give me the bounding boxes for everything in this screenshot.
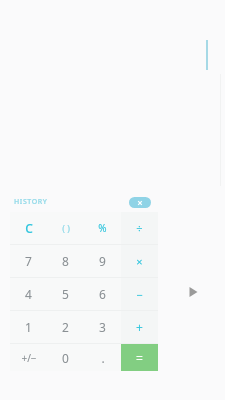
button[interactable]: 0 <box>47 344 84 371</box>
button[interactable]: Clear history <box>129 197 151 208</box>
staticText: ÷ <box>136 221 143 236</box>
button[interactable]: 4 <box>10 278 47 310</box>
button[interactable]: 7 <box>10 245 47 277</box>
button[interactable]: C <box>10 212 47 244</box>
staticText: % <box>98 221 107 235</box>
button[interactable]: + <box>121 311 158 343</box>
button[interactable]: × <box>121 245 158 277</box>
staticText: ( ) <box>62 222 70 234</box>
button[interactable]: 6 <box>84 278 121 310</box>
staticText: HISTORY <box>14 197 48 207</box>
staticText: 5 <box>62 286 69 302</box>
button[interactable]: . <box>84 344 121 371</box>
button[interactable]: 3 <box>84 311 121 343</box>
staticText: = <box>136 350 143 366</box>
staticText: 8 <box>62 253 69 269</box>
button[interactable]: ÷ <box>121 212 158 244</box>
button[interactable]: − <box>121 278 158 310</box>
staticText: + <box>136 319 143 335</box>
staticText: 9 <box>99 253 106 269</box>
staticText: +/− <box>21 351 37 365</box>
button[interactable]: 1 <box>10 311 47 343</box>
staticText: C <box>25 220 33 236</box>
button[interactable]: ( ) <box>47 212 84 244</box>
staticText: 7 <box>25 253 32 269</box>
staticText: . <box>101 350 105 366</box>
button[interactable]: = <box>121 344 158 371</box>
button[interactable]: 9 <box>84 245 121 277</box>
button[interactable]: 2 <box>47 311 84 343</box>
button[interactable]: % <box>84 212 121 244</box>
staticText: 4 <box>25 286 32 302</box>
button[interactable]: 8 <box>47 245 84 277</box>
staticText: 3 <box>99 319 106 335</box>
button[interactable]: Expand keypad <box>183 282 203 302</box>
staticText: 2 <box>62 319 69 335</box>
staticText: 0 <box>62 350 69 366</box>
button[interactable]: 5 <box>47 278 84 310</box>
staticText: 6 <box>99 286 106 302</box>
staticText: 1 <box>25 319 32 335</box>
button[interactable]: +/− <box>10 344 47 371</box>
staticText: × <box>136 254 143 269</box>
staticText: − <box>136 287 143 302</box>
